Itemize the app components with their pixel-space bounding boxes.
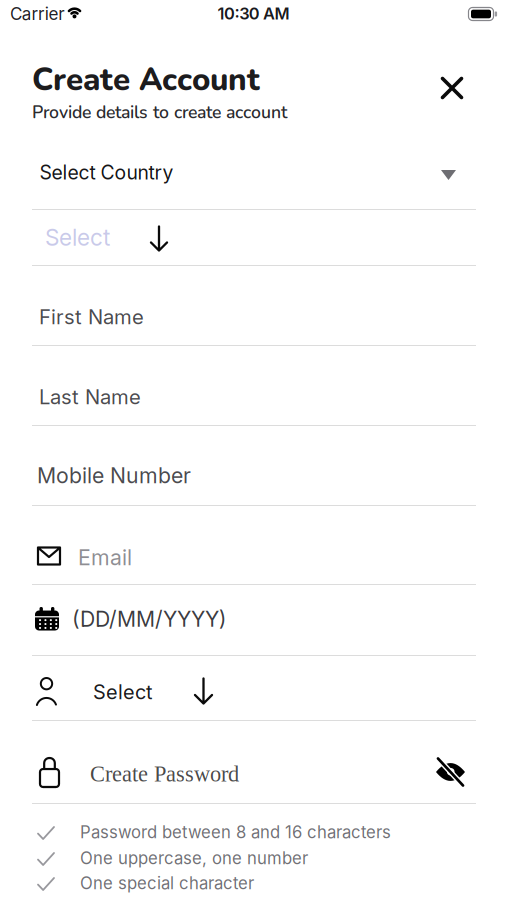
button[interactable]: First Name	[32, 292, 476, 342]
button[interactable]: (DD/MM/YYYY)	[32, 597, 476, 641]
button[interactable]: Email	[32, 534, 476, 578]
staticText: Carrier	[10, 3, 64, 24]
button[interactable]: Create Password	[33, 746, 413, 798]
staticText: First Name	[39, 305, 144, 329]
staticText: Last Name	[39, 385, 141, 409]
staticText: Mobile Number	[37, 463, 191, 488]
staticText: Provide details to create account	[32, 100, 287, 124]
button[interactable]	[436, 72, 467, 103]
button[interactable]	[432, 753, 469, 791]
staticText: One uppercase, one number	[80, 848, 308, 868]
button[interactable]: Last Name	[32, 372, 476, 422]
button[interactable]: Select	[32, 667, 476, 715]
staticText: Email	[78, 545, 132, 570]
staticText: Create Account	[32, 58, 260, 101]
staticText: Create Password	[90, 762, 239, 786]
staticText: (DD/MM/YYYY)	[72, 606, 227, 632]
button[interactable]: Select Country	[32, 150, 476, 194]
button[interactable]: Select	[32, 210, 476, 265]
staticText: Select Country	[39, 161, 173, 184]
button[interactable]: Mobile Number	[32, 450, 476, 500]
staticText: 10:30 AM	[217, 3, 290, 23]
staticText: Select	[45, 224, 110, 251]
staticText: One special character	[80, 873, 254, 893]
staticText: Select	[93, 680, 152, 704]
staticText: Password between 8 and 16 characters	[80, 822, 391, 842]
